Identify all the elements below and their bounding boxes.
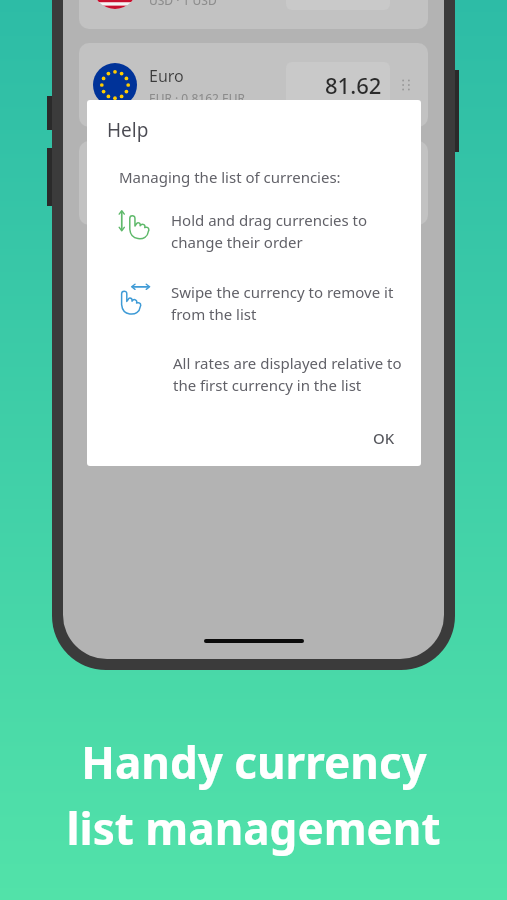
button[interactable]: US Dollar	[79, 0, 428, 29]
button[interactable]: Pound	[79, 141, 428, 225]
staticText: Help	[107, 117, 149, 143]
staticText: Euro	[149, 65, 184, 87]
staticText: 81.62	[325, 70, 382, 100]
staticText: list management	[66, 798, 441, 858]
staticText: Hold and drag currencies to change their…	[171, 210, 368, 253]
staticText: 71.04	[325, 168, 382, 198]
staticText: Managing the list of currencies:	[119, 167, 341, 187]
staticText: Swipe the currency to remove it from the…	[171, 282, 394, 325]
staticText: OK	[373, 428, 395, 448]
staticText: All rates are displayed relative to the …	[173, 353, 402, 396]
other: Swipe to remove	[113, 277, 155, 319]
button[interactable]: Euro	[79, 43, 428, 127]
staticText: Pound	[149, 163, 198, 185]
staticText: EUR · 0.8162 EUR	[149, 90, 245, 106]
button[interactable]: OK	[359, 420, 409, 456]
staticText: USD · 1 USD	[149, 0, 217, 8]
staticText: Handy currency	[81, 732, 427, 792]
other: Drag to reorder	[113, 205, 155, 247]
